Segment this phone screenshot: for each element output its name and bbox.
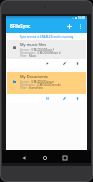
button[interactable]: edit [61, 95, 68, 102]
staticText: BFileSync [10, 23, 31, 29]
staticText: 10:08 [78, 16, 85, 19]
staticText: My Documents [20, 74, 48, 79]
button[interactable]: More options [75, 21, 86, 32]
staticText: Sync service is ENABLED and is running [20, 35, 74, 39]
button[interactable]: pause [44, 95, 51, 102]
staticText: Destination: [20, 83, 36, 86]
button[interactable]: Recent apps [59, 152, 70, 163]
staticText: Filter: [20, 86, 28, 89]
button[interactable]: edit [61, 60, 68, 67]
button[interactable]: Home [39, 152, 50, 163]
staticText: Everything [29, 86, 43, 89]
button[interactable]: Add sync task [64, 21, 75, 32]
button[interactable]: delete [74, 95, 81, 102]
button[interactable]: My music files [7, 40, 86, 68]
staticText: /CM/5000/Docs de [37, 83, 61, 86]
staticText: /CM/4000/Docum [31, 80, 54, 83]
button[interactable]: play [44, 60, 51, 67]
staticText: /CM/2000/Music d [37, 51, 61, 54]
button[interactable]: delete [74, 60, 81, 67]
staticText: Source: [20, 48, 30, 51]
staticText: /CM/2000/Music f [31, 48, 54, 51]
button[interactable]: My Documents [7, 72, 86, 103]
button[interactable]: Back [18, 152, 29, 163]
staticText: Source: [20, 80, 30, 83]
staticText: Destination: [20, 51, 36, 54]
staticText: Music [29, 54, 37, 57]
staticText: Filter: [20, 54, 28, 57]
staticText: My music files [20, 42, 47, 47]
